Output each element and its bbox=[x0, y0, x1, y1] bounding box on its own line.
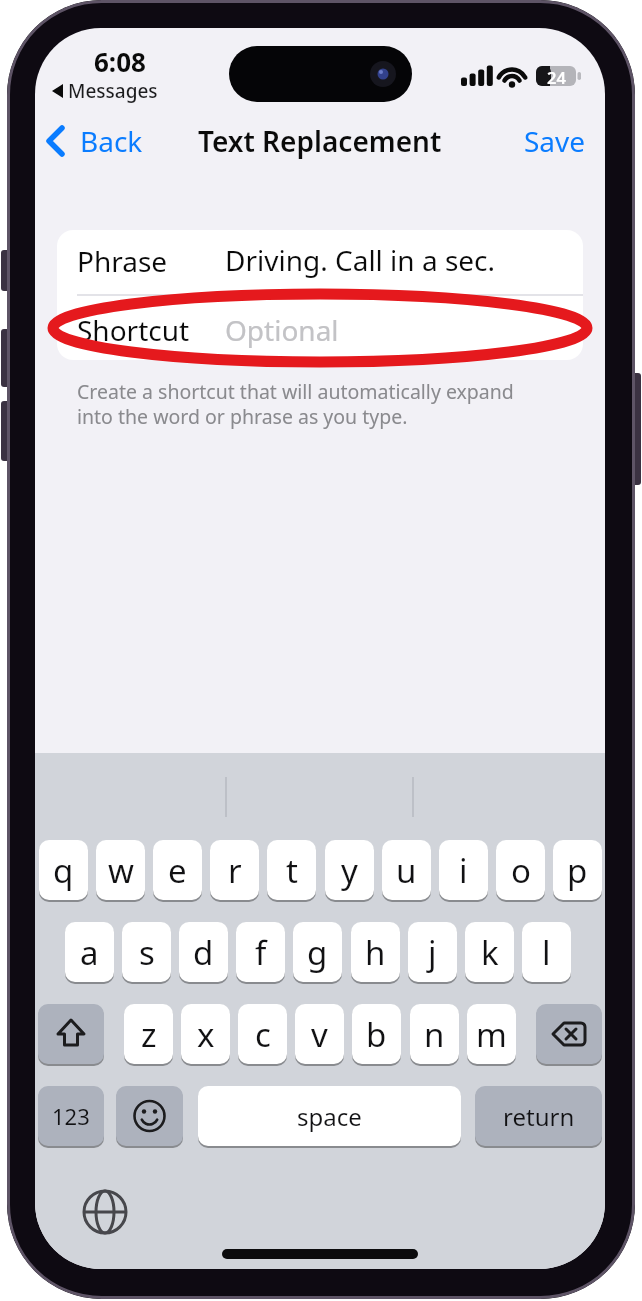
button[interactable]: u bbox=[382, 840, 431, 900]
staticText: w bbox=[108, 848, 134, 893]
staticText: m bbox=[476, 1012, 507, 1057]
button[interactable] bbox=[116, 1086, 183, 1146]
staticText: space bbox=[297, 1100, 362, 1133]
staticText: n bbox=[424, 1012, 445, 1057]
staticText: return bbox=[503, 1100, 575, 1133]
button[interactable]: h bbox=[351, 922, 400, 982]
button[interactable]: o bbox=[496, 840, 545, 900]
button[interactable]: Save bbox=[515, 118, 595, 164]
staticText: z bbox=[141, 1012, 157, 1057]
button[interactable]: e bbox=[153, 840, 202, 900]
button[interactable]: k bbox=[465, 922, 514, 982]
button[interactable] bbox=[40, 118, 190, 164]
staticText: f bbox=[255, 930, 267, 975]
staticText: a bbox=[80, 930, 99, 975]
staticText: 123 bbox=[52, 1101, 90, 1131]
button[interactable]: d bbox=[179, 922, 228, 982]
button[interactable]: 123 bbox=[38, 1086, 104, 1146]
button[interactable]: space bbox=[198, 1086, 461, 1146]
button[interactable]: q bbox=[39, 840, 88, 900]
button[interactable]: n bbox=[410, 1004, 459, 1064]
staticText: e bbox=[168, 848, 187, 893]
staticText: g bbox=[307, 930, 328, 975]
button[interactable] bbox=[38, 1004, 104, 1064]
button[interactable]: y bbox=[325, 840, 374, 900]
button[interactable]: w bbox=[96, 840, 145, 900]
button[interactable]: i bbox=[439, 840, 488, 900]
button[interactable] bbox=[75, 1182, 135, 1242]
staticText: Create a shortcut that will automaticall… bbox=[77, 378, 514, 405]
staticText: into the word or phrase as you type. bbox=[77, 403, 408, 430]
button[interactable]: m bbox=[467, 1004, 516, 1064]
staticText: y bbox=[341, 848, 358, 893]
button[interactable] bbox=[57, 295, 583, 360]
staticText: Phrase bbox=[77, 242, 168, 280]
button[interactable]: v bbox=[295, 1004, 344, 1064]
staticText: j bbox=[428, 930, 437, 975]
staticText: Save bbox=[524, 122, 586, 160]
staticText: Text Replacement bbox=[198, 122, 442, 160]
button[interactable]: x bbox=[181, 1004, 230, 1064]
staticText: 24 bbox=[547, 66, 566, 88]
button[interactable]: l bbox=[522, 922, 571, 982]
button[interactable]: g bbox=[293, 922, 342, 982]
button[interactable]: b bbox=[352, 1004, 401, 1064]
button[interactable]: r bbox=[210, 840, 259, 900]
staticText: k bbox=[481, 930, 499, 975]
button[interactable]: f bbox=[236, 922, 285, 982]
staticText: u bbox=[396, 848, 417, 893]
staticText: d bbox=[193, 930, 214, 975]
button[interactable]: return bbox=[475, 1086, 602, 1146]
button[interactable]: s bbox=[122, 922, 171, 982]
staticText: c bbox=[255, 1012, 271, 1057]
staticText: q bbox=[53, 848, 74, 893]
staticText: s bbox=[139, 930, 155, 975]
staticText: i bbox=[459, 848, 468, 893]
staticText: Messages bbox=[68, 78, 158, 104]
staticText: x bbox=[197, 1012, 215, 1057]
button[interactable] bbox=[536, 1004, 602, 1064]
staticText: h bbox=[365, 930, 386, 975]
staticText: p bbox=[567, 848, 588, 893]
button[interactable]: p bbox=[553, 840, 602, 900]
button[interactable]: c bbox=[238, 1004, 287, 1064]
staticText: r bbox=[228, 848, 242, 893]
button[interactable] bbox=[57, 230, 583, 295]
button[interactable]: j bbox=[408, 922, 457, 982]
button[interactable]: z bbox=[124, 1004, 173, 1064]
staticText: t bbox=[286, 848, 298, 893]
button[interactable]: a bbox=[65, 922, 114, 982]
staticText: l bbox=[542, 930, 551, 975]
staticText: o bbox=[511, 848, 531, 893]
staticText: 6:08 bbox=[94, 44, 146, 79]
staticText: Driving. Call in a sec. bbox=[225, 241, 496, 279]
staticText: Shortcut bbox=[77, 311, 190, 349]
staticText: Back bbox=[80, 122, 143, 160]
button[interactable]: t bbox=[267, 840, 316, 900]
staticText: b bbox=[366, 1012, 387, 1057]
staticText: v bbox=[311, 1012, 328, 1057]
staticText: Optional bbox=[225, 311, 339, 349]
